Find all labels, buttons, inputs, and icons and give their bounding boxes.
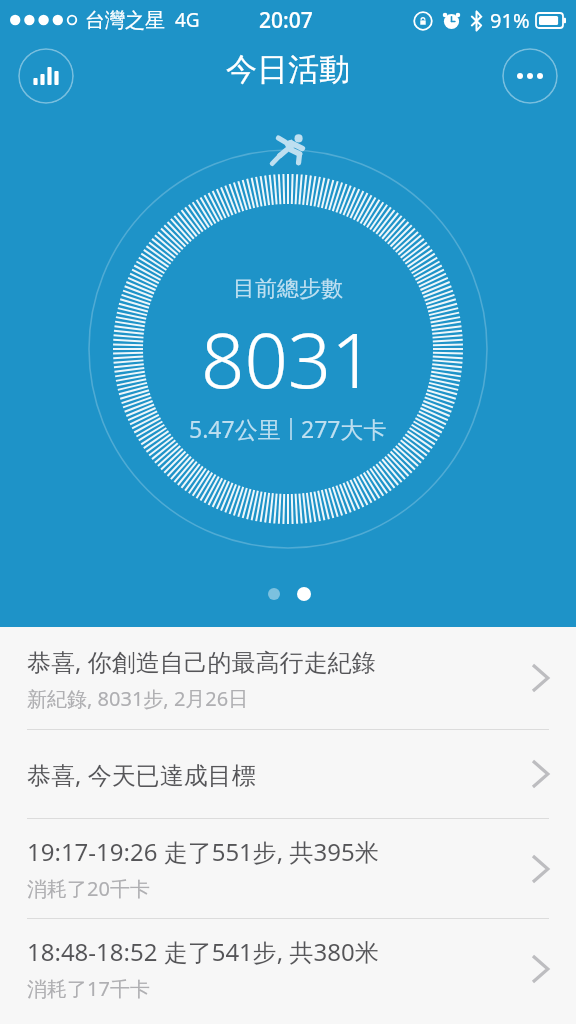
staticText: 消耗了20千卡 (27, 875, 150, 902)
staticText: 20:07 (259, 6, 313, 35)
staticText: 277大卡 (301, 413, 387, 444)
staticText: 91% (490, 7, 530, 34)
button[interactable]: 恭喜, 今天已達成目標 (0, 730, 576, 818)
staticText: 5.47公里 (189, 413, 281, 444)
staticText: 19:17-19:26 走了551步, 共395米 (27, 835, 379, 868)
staticText: 消耗了17千卡 (27, 975, 150, 1002)
button[interactable]: 18:48-18:52 走了541步, 共380米 (0, 919, 576, 1018)
staticText: 新紀錄, 8031步, 2月26日 (27, 685, 249, 712)
staticText: 恭喜, 你創造自己的最高行走紀錄 (27, 645, 376, 678)
staticText: 8031 (201, 307, 375, 411)
staticText: 台灣之星 (85, 8, 165, 33)
staticText: 4G (175, 7, 200, 33)
button[interactable]: Statistics (18, 48, 74, 104)
button[interactable]: More options (502, 48, 558, 104)
button[interactable]: 19:17-19:26 走了551步, 共395米 (0, 819, 576, 918)
staticText: 18:48-18:52 走了541步, 共380米 (27, 935, 379, 968)
staticText: 目前總步數 (233, 275, 343, 303)
staticText: 今日活動 (226, 50, 350, 89)
staticText: 恭喜, 今天已達成目標 (27, 758, 256, 791)
button[interactable]: 恭喜, 你創造自己的最高行走紀錄 (0, 627, 576, 729)
